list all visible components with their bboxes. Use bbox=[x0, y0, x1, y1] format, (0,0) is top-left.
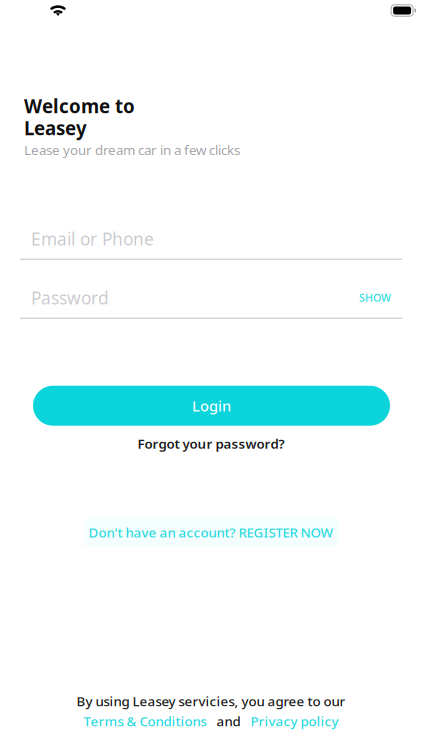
staticText: Forgot your password? bbox=[137, 435, 284, 452]
staticText: Privacy policy bbox=[250, 712, 338, 730]
button[interactable]: Privacy policy bbox=[250, 712, 338, 730]
staticText: and bbox=[216, 712, 240, 730]
staticText: By using Leasey servicies, you agree to … bbox=[76, 692, 345, 710]
button[interactable]: Terms & Conditions bbox=[83, 712, 206, 730]
staticText: Lease your dream car in a few clicks bbox=[24, 141, 240, 159]
staticText: Login bbox=[192, 396, 231, 415]
staticText: Email or Phone bbox=[31, 227, 154, 250]
staticText: Leasey bbox=[24, 116, 87, 140]
button[interactable]: SHOW bbox=[355, 285, 395, 311]
button[interactable]: Login bbox=[33, 386, 390, 426]
button[interactable]: Forgot your password? bbox=[0, 435, 422, 452]
staticText: Terms & Conditions bbox=[83, 712, 206, 730]
staticText: Welcome to bbox=[24, 94, 135, 118]
button[interactable]: Don't have an account? REGISTER NOW bbox=[0, 518, 422, 546]
staticText: Password bbox=[31, 286, 109, 309]
staticText: SHOW bbox=[359, 291, 391, 305]
staticText: Don't have an account? REGISTER NOW bbox=[88, 523, 333, 541]
